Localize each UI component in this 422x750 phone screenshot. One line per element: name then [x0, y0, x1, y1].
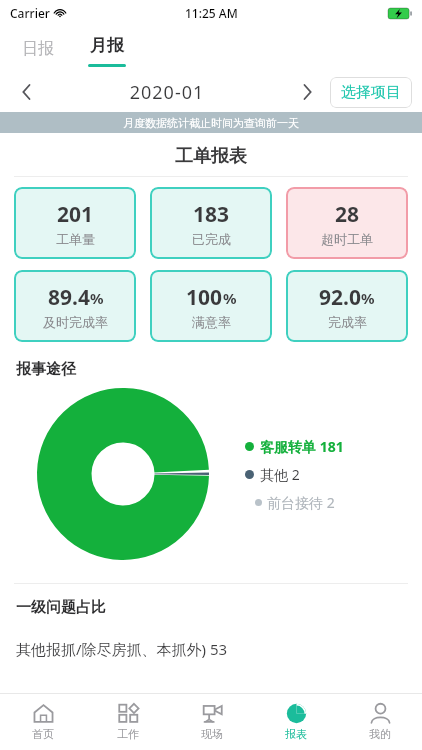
staticText: 89.4 — [48, 283, 90, 312]
staticText: 已完成 — [192, 231, 231, 247]
staticText: % — [361, 288, 375, 308]
staticText: 工单量 — [56, 231, 95, 247]
staticText: 工作 — [117, 727, 139, 741]
button[interactable]: 工作 — [85, 694, 170, 750]
staticText: 100 — [186, 283, 223, 312]
button[interactable]: 89.4 — [14, 270, 136, 342]
button[interactable]: 日报 — [0, 26, 72, 72]
staticText: 工单报表 — [0, 145, 422, 168]
staticText: 2020-01 — [44, 80, 290, 105]
staticText: 前台接待 2 — [267, 493, 335, 512]
staticText: 报事途径 — [16, 360, 76, 379]
staticText: 183 — [193, 200, 230, 229]
button[interactable]: 我的 — [338, 694, 422, 750]
staticText: 28 — [335, 200, 360, 229]
button[interactable]: 月报 — [72, 26, 142, 72]
button[interactable]: 201 — [14, 187, 136, 259]
button[interactable]: 183 — [150, 187, 272, 259]
staticText: 满意率 — [192, 314, 231, 330]
staticText: 选择项目 — [341, 83, 401, 102]
staticText: 及时完成率 — [43, 314, 108, 330]
staticText: 月报 — [90, 35, 124, 56]
button[interactable]: 选择项目 — [330, 77, 412, 108]
staticText: 其他 2 — [260, 465, 300, 484]
button[interactable]: 28 — [286, 187, 408, 259]
button[interactable]: 现场 — [170, 694, 254, 750]
staticText: 其他报抓/除尽房抓、本抓外) 53 — [16, 639, 228, 659]
staticText: % — [90, 288, 104, 308]
staticText: 客服转单 181 — [260, 437, 344, 456]
staticText: % — [223, 288, 237, 308]
button[interactable]: 92.0 — [286, 270, 408, 342]
staticText: 一级问题占比 — [16, 598, 106, 617]
staticText: 超时工单 — [321, 231, 373, 247]
button[interactable]: Next month — [290, 75, 324, 109]
button[interactable]: 100 — [150, 270, 272, 342]
button[interactable]: 报表 — [254, 694, 338, 750]
staticText: Carrier — [10, 5, 50, 21]
staticText: 现场 — [201, 727, 223, 741]
staticText: 报表 — [285, 727, 307, 741]
staticText: 92.0 — [319, 283, 361, 312]
staticText: 月度数据统计截止时间为查询前一天 — [123, 116, 299, 130]
button[interactable]: 首页 — [0, 694, 85, 750]
staticText: 日报 — [22, 39, 54, 59]
button[interactable]: Previous month — [10, 75, 44, 109]
staticText: 11:25 AM — [185, 5, 238, 21]
staticText: 完成率 — [328, 314, 367, 330]
staticText: 201 — [57, 200, 94, 229]
staticText: 我的 — [369, 727, 391, 741]
staticText: 首页 — [32, 727, 54, 741]
